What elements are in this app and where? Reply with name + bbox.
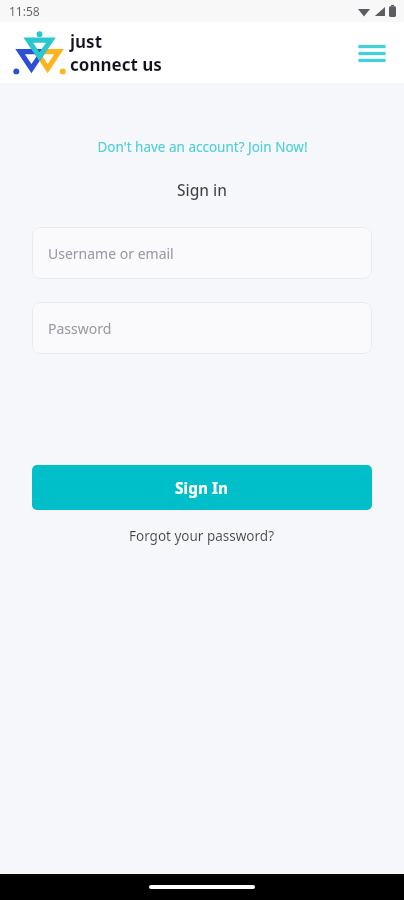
button[interactable]: Password <box>32 302 372 354</box>
staticText: connect us <box>70 53 162 76</box>
button[interactable]: Sign In <box>32 465 372 510</box>
staticText: Password <box>48 319 112 338</box>
button[interactable]: Don't have an account? Join Now! <box>0 134 404 160</box>
staticText: Don't have an account? Join Now! <box>97 138 308 156</box>
staticText: Sign in <box>177 179 227 200</box>
staticText: just <box>70 30 103 53</box>
staticText: Forgot your password? <box>129 527 275 545</box>
staticText: 11:58 <box>9 3 40 19</box>
button[interactable]: Forgot your password? <box>0 522 404 550</box>
button[interactable]: Open navigation menu <box>352 33 392 73</box>
staticText: Username or email <box>48 244 174 263</box>
button[interactable]: Username or email <box>32 227 372 279</box>
staticText: Sign In <box>175 477 229 498</box>
